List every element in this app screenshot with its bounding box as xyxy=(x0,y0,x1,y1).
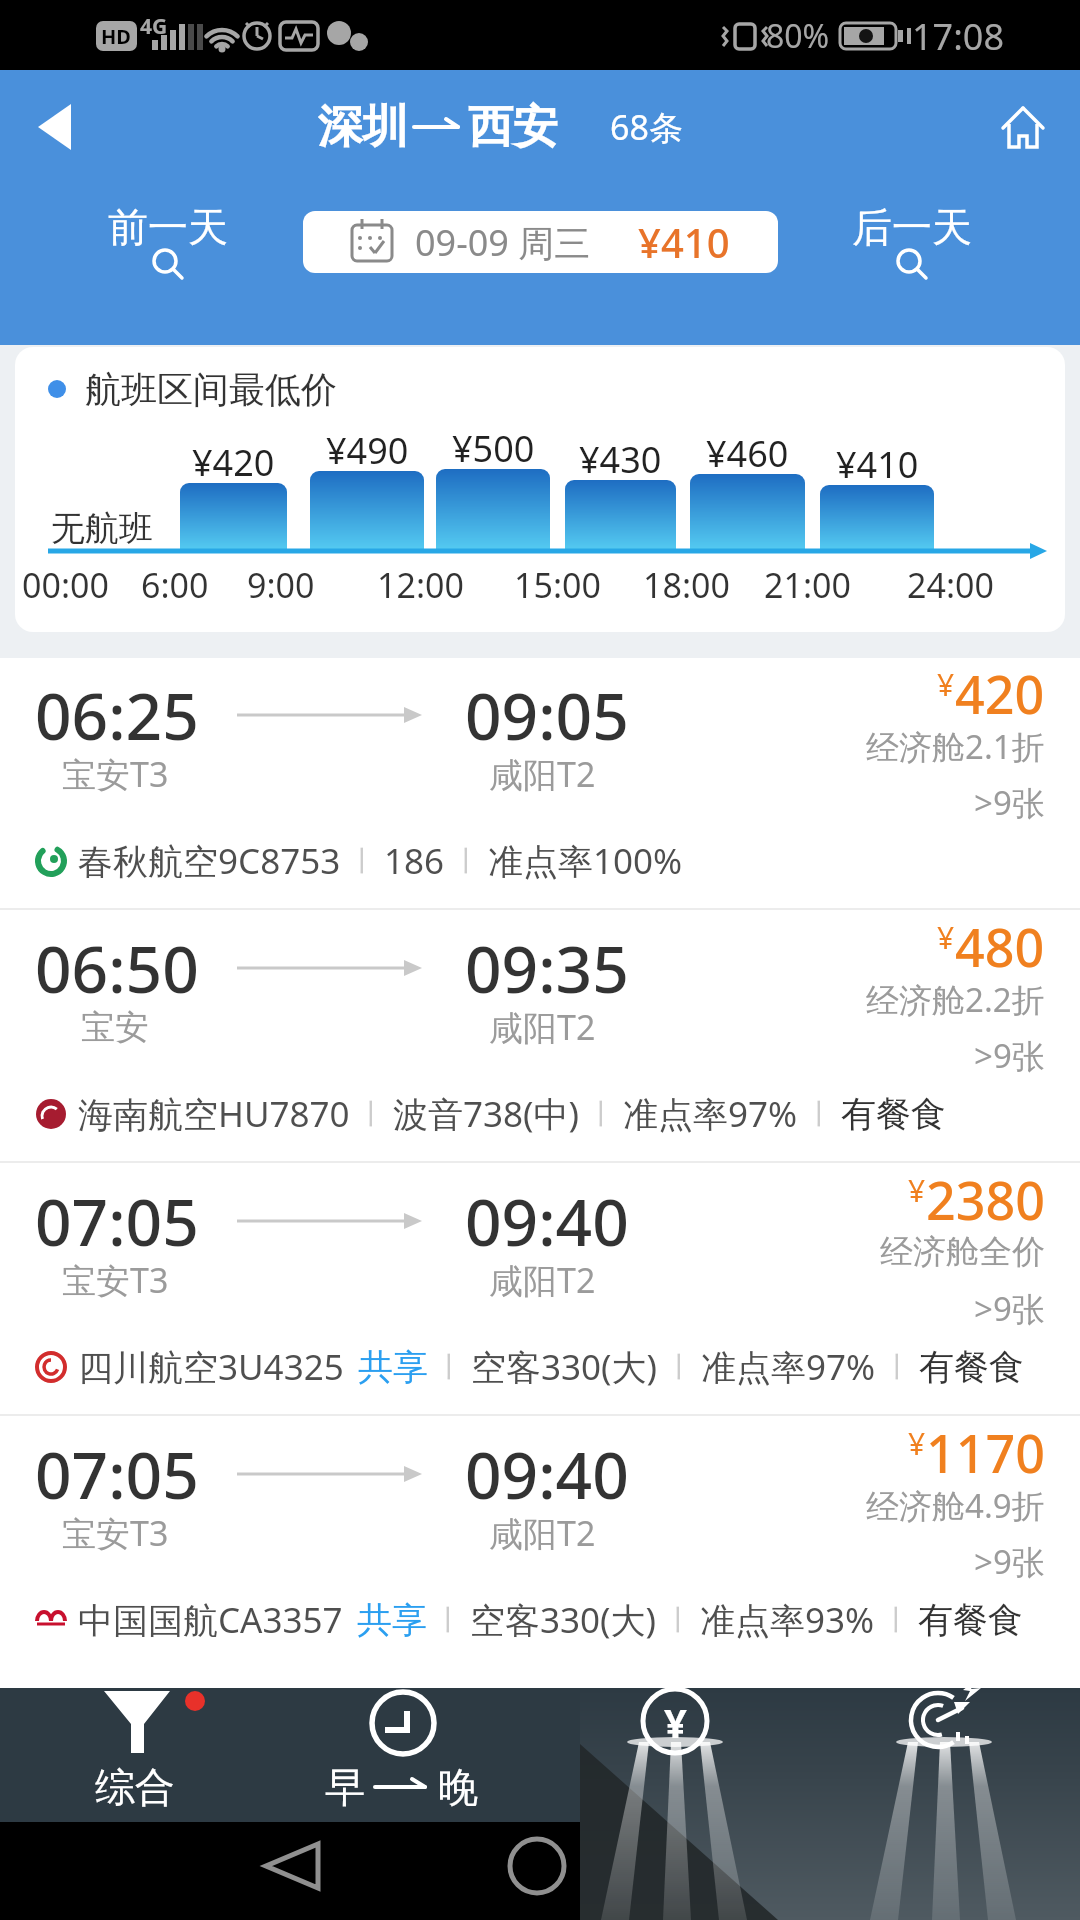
staticText: 丨 xyxy=(883,1603,910,1637)
staticText: 共享 xyxy=(358,1345,428,1389)
staticText: 丨 xyxy=(665,1603,692,1637)
button[interactable] xyxy=(255,1830,345,1910)
staticText: 6:00 xyxy=(141,562,209,608)
staticText: 480 xyxy=(955,911,1045,973)
button[interactable]: 07:05 xyxy=(0,1162,1080,1415)
staticText: 15:00 xyxy=(514,562,601,608)
staticText: 丨 xyxy=(358,1097,385,1131)
staticText: 准点率93% xyxy=(700,1596,875,1644)
staticText: 西安 xyxy=(468,99,558,156)
button[interactable] xyxy=(495,1830,585,1910)
staticText: ¥ xyxy=(908,1170,926,1211)
staticText: 宝安T3 xyxy=(62,751,169,797)
staticText: >9张 xyxy=(974,1033,1045,1078)
staticText: ¥ xyxy=(908,1423,926,1464)
staticText: 丨 xyxy=(435,1603,462,1637)
staticText: 空客330(大) xyxy=(470,1596,657,1644)
staticText: 航班区间最低价 xyxy=(85,367,337,412)
button[interactable] xyxy=(845,195,980,290)
staticText: 18:00 xyxy=(643,562,730,608)
staticText: 68条 xyxy=(610,104,683,150)
staticText: 经济舱全价 xyxy=(880,1231,1045,1273)
staticText: >9张 xyxy=(974,1286,1045,1331)
staticText: ¥420 xyxy=(192,438,275,487)
staticText: ¥410 xyxy=(638,215,730,269)
staticText: 早 xyxy=(325,1762,365,1812)
staticText: 后一天 xyxy=(852,202,972,252)
staticText: 80% xyxy=(766,14,830,58)
staticText: 有餐食 xyxy=(841,1092,946,1136)
staticText: 准点率97% xyxy=(701,1343,876,1391)
staticText: 深圳 xyxy=(318,99,408,156)
button[interactable]: 07:05 xyxy=(0,1415,1080,1668)
staticText: 00:00 xyxy=(22,562,109,608)
staticText: 有餐食 xyxy=(919,1345,1024,1389)
staticText: 09:35 xyxy=(465,925,629,1012)
button[interactable] xyxy=(303,211,778,273)
staticText: 9:00 xyxy=(247,562,315,608)
staticText: 186 xyxy=(384,837,445,885)
staticText: 准点率100% xyxy=(488,837,683,885)
staticText: 空客330(大) xyxy=(471,1343,658,1391)
staticText: 经济舱2.2折 xyxy=(866,977,1045,1022)
staticText: 2380 xyxy=(926,1164,1045,1226)
staticText: ¥ xyxy=(664,1695,687,1749)
staticText: 1170 xyxy=(926,1417,1045,1479)
staticText: 四川航空3U4325 xyxy=(78,1343,344,1391)
staticText: 春秋航空9C8753 xyxy=(78,837,341,885)
staticText: 丨 xyxy=(349,844,376,878)
staticText: 09-09 周三 xyxy=(415,218,591,267)
staticText: 宝安T3 xyxy=(62,1510,169,1556)
staticText: 21:00 xyxy=(764,562,851,608)
staticText: ¥500 xyxy=(452,424,535,473)
staticText: 经济舱4.9折 xyxy=(866,1483,1045,1528)
staticText: 咸阳T2 xyxy=(489,751,596,797)
staticText: ¥ xyxy=(937,917,955,958)
staticText: 丨 xyxy=(453,844,480,878)
staticText: >9张 xyxy=(974,780,1045,825)
staticText: 07:05 xyxy=(35,1178,199,1265)
button[interactable] xyxy=(870,1680,1020,1810)
staticText: 海南航空HU7870 xyxy=(78,1090,350,1138)
button[interactable]: 06:50 xyxy=(0,909,1080,1162)
staticText: 前一天 xyxy=(108,202,228,252)
button[interactable] xyxy=(20,95,90,160)
staticText: 09:05 xyxy=(465,672,629,759)
staticText: 丨 xyxy=(588,1097,615,1131)
staticText: 咸阳T2 xyxy=(489,1004,596,1050)
staticText: 24:00 xyxy=(907,562,994,608)
button[interactable] xyxy=(995,100,1055,160)
staticText: HD xyxy=(101,23,131,50)
staticText: 丨 xyxy=(436,1350,463,1384)
staticText: 420 xyxy=(955,658,1045,720)
staticText: 准点率97% xyxy=(623,1090,798,1138)
staticText: 丨 xyxy=(666,1350,693,1384)
staticText: 丨 xyxy=(884,1350,911,1384)
staticText: 综合 xyxy=(95,1762,175,1812)
staticText: 咸阳T2 xyxy=(489,1257,596,1303)
staticText: 咸阳T2 xyxy=(489,1510,596,1556)
button[interactable] xyxy=(100,195,235,290)
staticText: 09:40 xyxy=(465,1178,629,1265)
staticText: 07:05 xyxy=(35,1431,199,1518)
staticText: 宝安 xyxy=(81,1006,149,1049)
staticText: 17:08 xyxy=(912,12,1005,61)
button[interactable] xyxy=(60,1680,220,1810)
staticText: 09:40 xyxy=(465,1431,629,1518)
button[interactable]: 06:25 xyxy=(0,656,1080,909)
staticText: 经济舱2.1折 xyxy=(866,724,1045,769)
button[interactable] xyxy=(600,1680,750,1810)
staticText: ¥410 xyxy=(836,440,919,489)
staticText: ¥ xyxy=(937,664,955,705)
staticText: 有餐食 xyxy=(918,1598,1023,1642)
staticText: ¥490 xyxy=(326,426,409,475)
staticText: 无航班 xyxy=(51,507,153,550)
staticText: ¥430 xyxy=(579,435,662,484)
staticText: 06:25 xyxy=(35,672,199,759)
staticText: 波音738(中) xyxy=(393,1090,580,1138)
staticText: 4G xyxy=(140,12,168,41)
staticText: 06:50 xyxy=(35,925,199,1012)
staticText: 宝安T3 xyxy=(62,1257,169,1303)
button[interactable] xyxy=(320,1680,490,1810)
staticText: >9张 xyxy=(974,1539,1045,1584)
